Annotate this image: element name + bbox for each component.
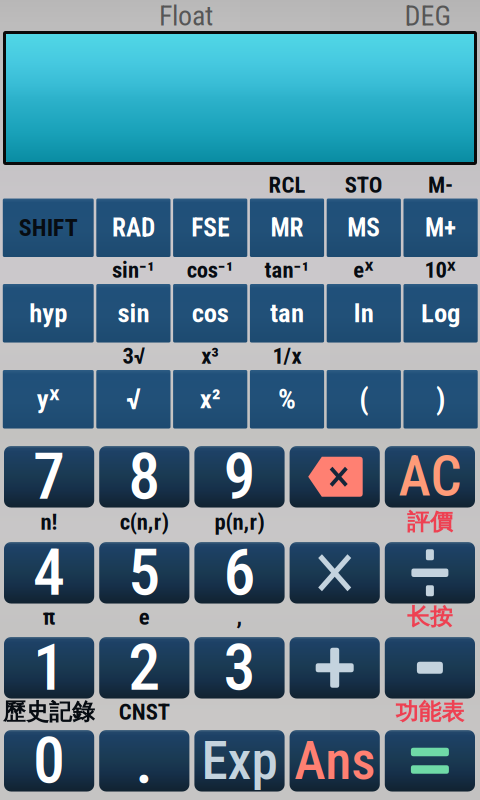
button[interactable]: FSE bbox=[172, 198, 249, 257]
button[interactable]: √ bbox=[95, 370, 172, 428]
button[interactable]: Divide bbox=[382, 542, 477, 603]
button[interactable]: 4 bbox=[1, 542, 97, 603]
staticText: √ bbox=[126, 382, 141, 416]
staticText: eˣ bbox=[353, 257, 374, 283]
staticText: 1/x bbox=[272, 343, 301, 369]
button[interactable]: DEG bbox=[383, 1, 473, 31]
button[interactable]: ln bbox=[325, 284, 402, 342]
staticText: 3√ bbox=[122, 343, 144, 369]
staticText: 功能表 bbox=[395, 698, 464, 726]
button[interactable]: % bbox=[249, 370, 325, 428]
staticText: tan⁻¹ bbox=[264, 257, 309, 283]
staticText: FSE bbox=[191, 213, 229, 243]
staticText: 2 bbox=[128, 630, 160, 705]
button[interactable]: Equals bbox=[382, 730, 477, 791]
button[interactable]: 1 bbox=[1, 637, 97, 698]
staticText: p(n,r) bbox=[214, 509, 264, 535]
staticText: 10ˣ bbox=[425, 257, 457, 283]
button[interactable]: 6 bbox=[192, 542, 287, 603]
button[interactable]: M+ bbox=[402, 198, 479, 257]
staticText: 7 bbox=[33, 439, 65, 514]
staticText: Float bbox=[159, 0, 213, 32]
staticText: RCL bbox=[268, 172, 305, 198]
staticText: 8 bbox=[128, 439, 160, 514]
staticText: sin⁻¹ bbox=[112, 257, 155, 283]
button[interactable]: tan bbox=[249, 284, 325, 342]
staticText: π bbox=[43, 604, 56, 630]
staticText: 0 bbox=[33, 723, 65, 798]
button[interactable]: Minus bbox=[382, 637, 477, 698]
staticText: ) bbox=[436, 382, 445, 416]
staticText: 9 bbox=[223, 439, 255, 514]
staticText: yˣ bbox=[37, 384, 60, 415]
button[interactable]: SHIFT bbox=[1, 198, 95, 257]
staticText: SHIFT bbox=[19, 214, 78, 242]
staticText: M- bbox=[428, 172, 453, 198]
staticText: 歷史記錄 bbox=[3, 698, 95, 726]
button[interactable]: MS bbox=[325, 198, 402, 257]
staticText: Log bbox=[421, 298, 460, 329]
staticText: 5 bbox=[128, 535, 160, 610]
staticText: sin bbox=[117, 298, 149, 329]
staticText: MS bbox=[347, 213, 380, 243]
staticText: c(n,r) bbox=[120, 509, 169, 535]
button[interactable]: yˣ bbox=[1, 370, 95, 428]
button[interactable]: cos bbox=[172, 284, 249, 342]
staticText: 評價 bbox=[407, 508, 453, 536]
button[interactable]: x² bbox=[172, 370, 249, 428]
button[interactable]: sin bbox=[95, 284, 172, 342]
staticText: . bbox=[135, 723, 153, 798]
button[interactable]: 8 bbox=[97, 446, 192, 507]
button[interactable]: 7 bbox=[1, 446, 97, 507]
staticText: 长按 bbox=[407, 603, 453, 631]
staticText: % bbox=[278, 383, 296, 416]
button[interactable]: Float bbox=[126, 1, 246, 31]
button[interactable]: RAD bbox=[95, 198, 172, 257]
button[interactable]: Multiply bbox=[287, 542, 382, 603]
staticText: cos bbox=[192, 298, 229, 329]
staticText: 6 bbox=[223, 535, 255, 610]
staticText: cos⁻¹ bbox=[187, 257, 234, 283]
staticText: , bbox=[236, 604, 242, 630]
staticText: n! bbox=[41, 509, 58, 535]
button[interactable]: ) bbox=[402, 370, 479, 428]
button[interactable]: Exp bbox=[192, 730, 287, 791]
staticText: 3 bbox=[223, 630, 255, 705]
button[interactable]: hyp bbox=[1, 284, 95, 342]
button[interactable]: ( bbox=[325, 370, 402, 428]
button[interactable]: 5 bbox=[97, 542, 192, 603]
staticText: hyp bbox=[29, 298, 67, 329]
button[interactable]: Ans bbox=[287, 730, 382, 791]
staticText: Ans bbox=[294, 729, 375, 792]
button[interactable]: MR bbox=[249, 198, 325, 257]
button[interactable]: 3 bbox=[192, 637, 287, 698]
staticText: x² bbox=[200, 384, 221, 415]
button[interactable]: Log bbox=[402, 284, 479, 342]
staticText: MR bbox=[270, 213, 303, 243]
staticText: RAD bbox=[112, 213, 155, 243]
staticText: CNST bbox=[119, 699, 170, 725]
staticText: ( bbox=[359, 382, 368, 416]
staticText: ln bbox=[354, 298, 374, 329]
staticText: 1 bbox=[33, 630, 65, 705]
staticText: M+ bbox=[425, 213, 456, 243]
button[interactable]: 0 bbox=[1, 730, 97, 791]
staticText: Exp bbox=[201, 729, 277, 792]
staticText: STO bbox=[345, 172, 383, 198]
staticText: x³ bbox=[201, 343, 219, 369]
staticText: DEG bbox=[404, 0, 451, 32]
button[interactable]: Plus bbox=[287, 637, 382, 698]
button[interactable]: 9 bbox=[192, 446, 287, 507]
button[interactable]: Backspace bbox=[287, 446, 382, 507]
staticText: 4 bbox=[33, 535, 65, 610]
button[interactable]: . bbox=[97, 730, 192, 791]
button[interactable]: AC bbox=[382, 446, 477, 507]
staticText: AC bbox=[398, 445, 461, 509]
staticText: e bbox=[139, 604, 150, 630]
button[interactable]: 2 bbox=[97, 637, 192, 698]
staticText: tan bbox=[270, 298, 304, 329]
